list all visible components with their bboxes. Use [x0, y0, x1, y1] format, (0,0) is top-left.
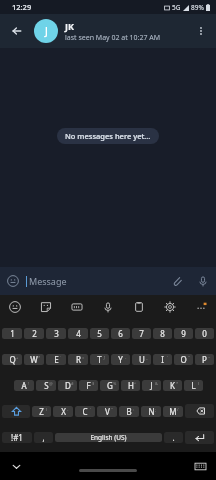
- staticText: 3: [54, 328, 59, 339]
- button[interactable]: ': [153, 354, 172, 365]
- staticText: ^: [134, 381, 137, 386]
- button[interactable]: ': [75, 406, 95, 417]
- staticText: -: [125, 355, 127, 360]
- button[interactable]: 6: [111, 328, 130, 339]
- button[interactable]: /: [163, 406, 183, 417]
- button[interactable]: #: [58, 380, 77, 391]
- button[interactable]: 5: [90, 328, 109, 339]
- staticText: U: [139, 354, 145, 365]
- button[interactable]: Settings: [154, 295, 185, 318]
- button[interactable]: Back: [0, 14, 34, 48]
- button[interactable]: -: [53, 406, 73, 417]
- staticText: ∫: [103, 355, 106, 360]
- button[interactable]: =: [68, 354, 88, 365]
- button[interactable]: ´: [46, 354, 66, 365]
- staticText: 12:29: [12, 2, 32, 12]
- button[interactable]: ,: [34, 432, 53, 443]
- button[interactable]: &: [142, 380, 161, 391]
- button[interactable]: Emoji: [0, 295, 30, 318]
- button[interactable]: Emoji: [0, 268, 26, 294]
- staticText: ": [188, 355, 190, 360]
- staticText: +: [16, 355, 19, 360]
- button[interactable]: *: [163, 380, 182, 391]
- button[interactable]: Clipboard: [123, 295, 154, 318]
- staticText: G: [107, 380, 113, 391]
- staticText: %: [113, 381, 117, 386]
- button[interactable]: ^: [121, 380, 140, 391]
- button[interactable]: Hide keyboard: [6, 456, 26, 476]
- staticText: 8: [160, 328, 165, 339]
- button[interactable]: +: [2, 354, 22, 365]
- button[interactable]: :: [119, 406, 139, 417]
- button[interactable]: !#1: [2, 432, 32, 443]
- button[interactable]: %: [100, 380, 119, 391]
- button[interactable]: *: [24, 354, 44, 365]
- button[interactable]: ): [32, 406, 51, 417]
- button[interactable]: Enter: [185, 431, 214, 444]
- staticText: T: [97, 354, 102, 365]
- button[interactable]: 8: [153, 328, 172, 339]
- staticText: JK: [65, 20, 74, 32]
- button[interactable]: Voice message: [190, 268, 216, 294]
- staticText: -: [67, 407, 69, 412]
- staticText: #: [71, 381, 74, 386]
- button[interactable]: Backspace: [185, 404, 214, 418]
- staticText: Z: [39, 406, 44, 417]
- button[interactable]: (: [184, 380, 203, 391]
- staticText: @: [49, 381, 53, 386]
- button[interactable]: 7: [132, 328, 151, 339]
- staticText: S: [44, 380, 49, 391]
- staticText: No messages here yet…: [65, 131, 151, 141]
- staticText: !: [28, 381, 30, 386]
- button[interactable]: ∫: [90, 354, 109, 365]
- staticText: =: [82, 355, 85, 360]
- button[interactable]: Message: [26, 268, 164, 294]
- staticText: ": [111, 407, 113, 412]
- button[interactable]: 0: [195, 328, 214, 339]
- staticText: ': [90, 407, 91, 412]
- button[interactable]: 4: [68, 328, 88, 339]
- button[interactable]: ~: [195, 354, 214, 365]
- staticText: 5: [97, 328, 102, 339]
- button[interactable]: Shift: [2, 405, 30, 418]
- button[interactable]: ;: [141, 406, 161, 417]
- staticText: 2: [32, 328, 37, 339]
- button[interactable]: 9: [174, 328, 193, 339]
- staticText: 4: [76, 328, 81, 339]
- button[interactable]: @: [36, 380, 56, 391]
- button[interactable]: More: [185, 295, 216, 318]
- staticText: $: [92, 381, 95, 386]
- staticText: !#1: [11, 432, 23, 443]
- staticText: _: [146, 355, 148, 360]
- staticText: 89%: [191, 3, 204, 12]
- staticText: 1: [10, 328, 15, 339]
- button[interactable]: 3: [46, 328, 66, 339]
- button[interactable]: !: [14, 380, 34, 391]
- button[interactable]: Switch keyboard: [190, 456, 210, 476]
- button[interactable]: ": [174, 354, 193, 365]
- button[interactable]: English (US): [55, 433, 162, 442]
- button[interactable]: 2: [24, 328, 44, 339]
- staticText: Message: [29, 275, 67, 287]
- button[interactable]: GIF: [61, 295, 92, 318]
- staticText: P: [202, 354, 207, 365]
- button[interactable]: Attach: [164, 268, 190, 294]
- button[interactable]: Voice input: [92, 295, 123, 318]
- staticText: E: [54, 354, 59, 365]
- button[interactable]: More options: [186, 16, 216, 46]
- button[interactable]: $: [79, 380, 98, 391]
- staticText: English (US): [90, 433, 127, 442]
- button[interactable]: 1: [2, 328, 22, 339]
- button[interactable]: .: [164, 432, 183, 443]
- button[interactable]: -: [111, 354, 130, 365]
- staticText: Y: [118, 354, 123, 365]
- button[interactable]: ": [97, 406, 117, 417]
- staticText: ,: [42, 432, 45, 443]
- staticText: 6: [118, 328, 123, 339]
- staticText: F: [86, 380, 91, 391]
- staticText: C: [82, 406, 88, 417]
- staticText: M: [169, 406, 177, 417]
- button[interactable]: Stickers: [30, 295, 61, 318]
- button[interactable]: _: [132, 354, 151, 365]
- staticText: 7: [139, 328, 144, 339]
